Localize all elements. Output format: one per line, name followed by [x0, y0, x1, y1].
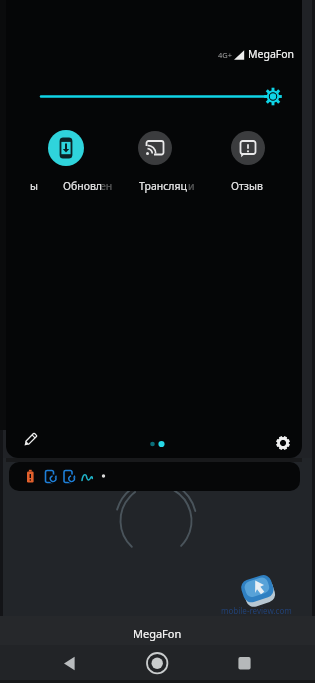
staticText: ен [100, 179, 113, 193]
staticText: и [188, 179, 195, 193]
button[interactable] [133, 126, 177, 196]
staticText: mobile-review.com [221, 605, 292, 616]
button[interactable] [25, 82, 290, 112]
staticText: MegaFon [133, 626, 182, 641]
staticText: Трансляц [139, 179, 188, 193]
button[interactable] [268, 428, 298, 458]
button[interactable] [133, 646, 181, 681]
button[interactable] [44, 126, 88, 196]
staticText: MegaFon [248, 47, 295, 61]
staticText: Отзыв [231, 179, 263, 193]
button[interactable] [14, 426, 46, 454]
button[interactable] [220, 646, 268, 681]
staticText: ы [30, 179, 38, 193]
button[interactable] [44, 646, 92, 681]
staticText: Обновл [63, 179, 103, 193]
staticText: 4G+ [218, 50, 233, 60]
button[interactable] [226, 126, 270, 196]
button[interactable] [9, 462, 300, 491]
